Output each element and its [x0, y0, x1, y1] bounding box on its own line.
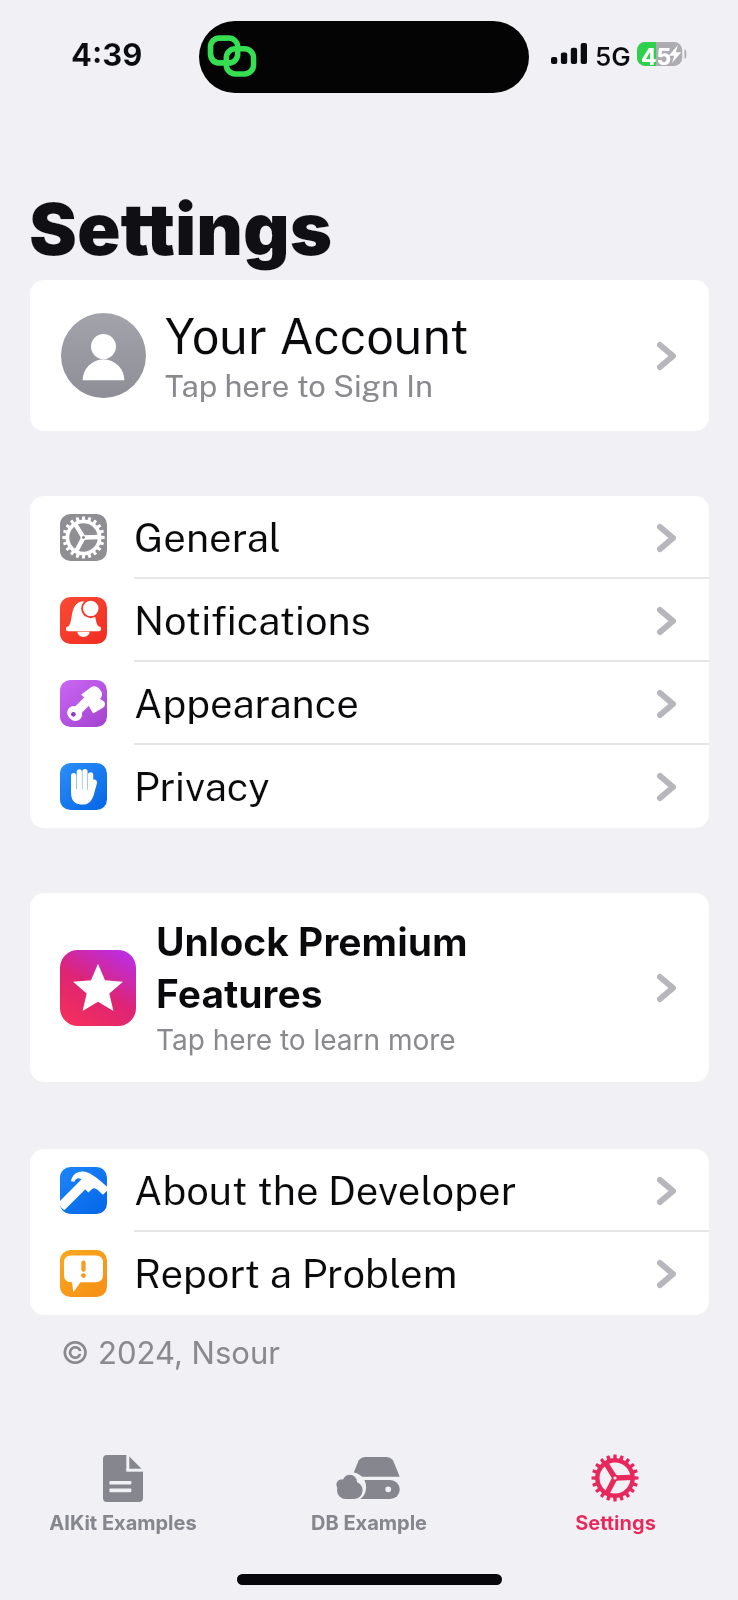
staticText: Settings [29, 185, 332, 272]
staticText: 45 [641, 43, 672, 67]
staticText: About the Developer [134, 1167, 517, 1214]
button[interactable]: Notifications [30, 579, 709, 662]
button[interactable]: General [30, 496, 709, 579]
staticText: Privacy [134, 763, 270, 810]
staticText: Settings [575, 1511, 656, 1535]
staticText: AIKit Examples [49, 1511, 197, 1535]
button[interactable]: About the Developer [30, 1149, 709, 1232]
button[interactable]: AIKit Examples [0, 1454, 246, 1535]
button[interactable]: Appearance [30, 662, 709, 745]
button[interactable]: DB Example [246, 1454, 492, 1535]
staticText: General [134, 514, 281, 561]
staticText: Report a Problem [134, 1250, 458, 1297]
staticText: Notifications [134, 597, 371, 644]
button[interactable]: Your Account [30, 280, 709, 431]
staticText: Appearance [134, 680, 359, 727]
staticText: DB Example [311, 1511, 427, 1535]
staticText: Unlock Premium Features [156, 918, 496, 1018]
staticText: 4:39 [71, 36, 143, 74]
staticText: © 2024, Nsour [61, 1334, 280, 1372]
button[interactable]: Unlock Premium Features [30, 893, 709, 1082]
staticText: 5G [595, 41, 631, 72]
staticText: Tap here to learn more [156, 1023, 456, 1057]
staticText: Your Account [165, 307, 469, 365]
button[interactable]: Report a Problem [30, 1232, 709, 1315]
staticText: Tap here to Sign In [165, 368, 433, 404]
button[interactable]: Privacy [30, 745, 709, 828]
button[interactable]: Settings [492, 1454, 738, 1535]
